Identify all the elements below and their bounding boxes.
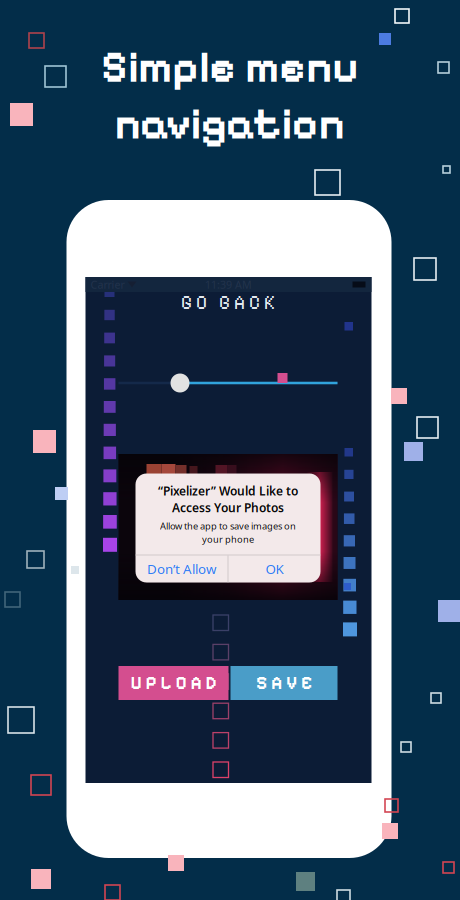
button[interactable]: U P L O A D bbox=[118, 666, 228, 700]
staticText: 11:39 AM bbox=[205, 277, 252, 292]
staticText: Allow the app to save images on bbox=[160, 520, 296, 532]
staticText: Carrier bbox=[90, 277, 124, 292]
button[interactable]: Don’t Allow bbox=[135, 555, 228, 582]
staticText: OK bbox=[265, 560, 283, 578]
staticText: S A V E bbox=[256, 672, 312, 694]
button[interactable]: S A V E bbox=[230, 666, 337, 700]
staticText: Access Your Photos bbox=[172, 500, 284, 516]
button[interactable]: OK bbox=[228, 555, 320, 582]
staticText: G O B A C K bbox=[181, 292, 275, 314]
staticText: “Pixelizer” Would Like to bbox=[158, 483, 298, 499]
button[interactable]: G O B A C K bbox=[173, 288, 283, 318]
staticText: Simple menu bbox=[101, 41, 359, 94]
staticText: Don’t Allow bbox=[147, 560, 216, 578]
staticText: your phone bbox=[202, 533, 254, 545]
staticText: navigation bbox=[114, 98, 345, 151]
staticText: U P L O A D bbox=[130, 672, 216, 694]
